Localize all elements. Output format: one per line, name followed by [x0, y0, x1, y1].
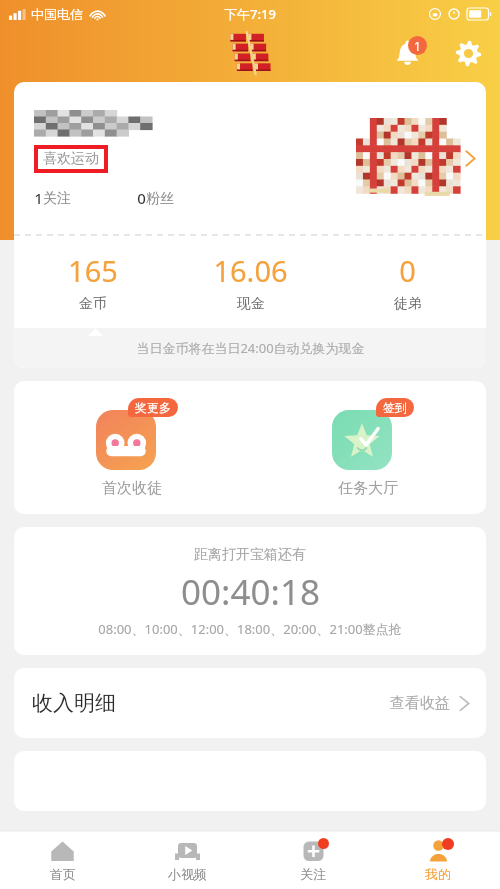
staticText: 任务大厅	[338, 479, 398, 498]
staticText: 08:00、10:00、12:00、18:00、20:00、21:00整点抢	[98, 620, 402, 638]
staticText: 关注	[43, 190, 71, 208]
staticText: 下午7:19	[224, 5, 276, 23]
button[interactable]: 我的	[375, 831, 500, 889]
staticText: 中国电信	[31, 6, 83, 22]
staticText: 喜欢运动	[43, 150, 99, 168]
button[interactable]: 关注	[250, 831, 375, 889]
staticText: 1	[414, 38, 421, 54]
staticText: 关注	[300, 866, 326, 882]
staticText: 0	[399, 251, 416, 290]
staticText: 165	[68, 251, 118, 290]
staticText: 00:40:18	[181, 568, 320, 616]
button[interactable]: 距离打开宝箱还有	[14, 527, 486, 655]
staticText: 收入明细	[32, 690, 116, 716]
button[interactable]: 首页	[0, 831, 125, 889]
staticText: 0	[137, 188, 146, 208]
button[interactable]: 奖更多	[14, 381, 250, 514]
button[interactable]: Notifications	[386, 32, 428, 74]
button[interactable]: Settings	[447, 32, 489, 74]
staticText: 现金	[237, 295, 265, 313]
button[interactable]: 签到	[250, 381, 486, 514]
staticText: 徒弟	[394, 295, 422, 313]
staticText: 距离打开宝箱还有	[194, 546, 306, 564]
staticText: 小视频	[168, 866, 207, 882]
staticText: 粉丝	[146, 190, 174, 208]
staticText: 首次收徒	[102, 479, 162, 498]
button[interactable]: 喜欢运动	[14, 82, 486, 235]
staticText: 首页	[50, 866, 76, 882]
staticText: 金币	[79, 295, 107, 313]
staticText: 查看收益	[390, 694, 450, 713]
button[interactable]: 收入明细	[14, 668, 486, 738]
staticText: 16.06	[213, 251, 288, 290]
staticText: 当日金币将在当日24:00自动兑换为现金	[136, 339, 365, 357]
staticText: 我的	[425, 866, 451, 882]
staticText: 1	[34, 188, 43, 208]
button[interactable]: 小视频	[125, 831, 250, 889]
staticText: 签到	[383, 400, 407, 415]
staticText: 奖更多	[135, 400, 171, 415]
